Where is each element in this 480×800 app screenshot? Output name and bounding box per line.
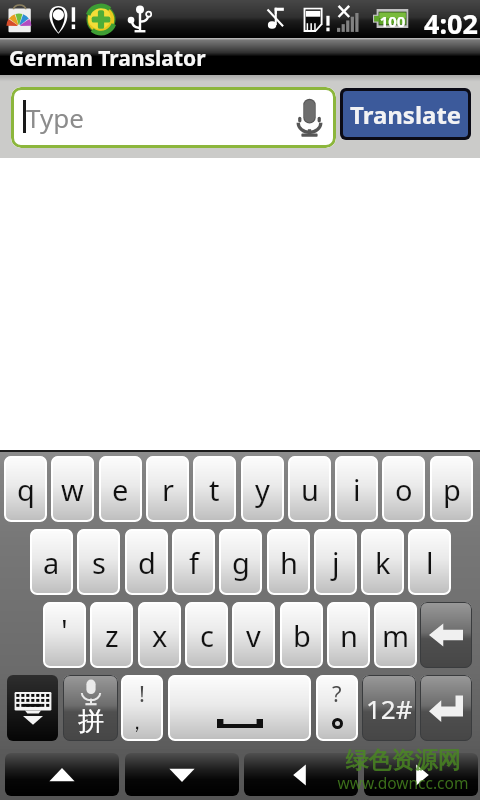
staticText: 100 xyxy=(377,11,408,31)
staticText: g xyxy=(232,543,250,582)
staticText: ? xyxy=(332,678,342,708)
button[interactable]: Symbols xyxy=(362,675,416,741)
staticText: a xyxy=(43,543,60,582)
button[interactable]: h xyxy=(267,529,310,595)
button[interactable]: n xyxy=(327,602,370,668)
button[interactable]: Left xyxy=(244,753,358,796)
button[interactable]: Backspace xyxy=(420,602,472,668)
staticText: s xyxy=(92,543,106,582)
staticText: h xyxy=(280,543,298,582)
staticText: Translate xyxy=(350,98,462,131)
button[interactable]: Type xyxy=(11,87,336,148)
button[interactable]: t xyxy=(193,456,236,522)
staticText: 绿色资源网 xyxy=(340,746,466,775)
button[interactable]: y xyxy=(241,456,284,522)
button[interactable]: exclamation xyxy=(121,675,163,741)
staticText: j xyxy=(332,543,340,582)
button[interactable]: v xyxy=(232,602,275,668)
staticText: 拼 xyxy=(78,705,104,738)
button[interactable]: o xyxy=(382,456,425,522)
staticText: q xyxy=(17,470,35,509)
staticText: o xyxy=(395,470,413,509)
staticText: u xyxy=(301,470,319,509)
staticText: w xyxy=(61,470,84,509)
button[interactable]: q xyxy=(4,456,47,522)
staticText: German Translator xyxy=(9,44,206,73)
button[interactable]: l xyxy=(408,529,451,595)
button[interactable]: w xyxy=(51,456,94,522)
button[interactable]: g xyxy=(219,529,262,595)
button[interactable]: Hide keyboard xyxy=(7,675,58,741)
button[interactable]: m xyxy=(374,602,417,668)
button[interactable]: Up xyxy=(5,753,119,796)
button[interactable]: s xyxy=(77,529,120,595)
button[interactable]: f xyxy=(172,529,215,595)
staticText: b xyxy=(293,616,311,655)
button[interactable]: j xyxy=(314,529,357,595)
button[interactable]: a xyxy=(30,529,73,595)
staticText: f xyxy=(189,543,199,582)
staticText: 4:02 xyxy=(424,5,478,42)
button[interactable]: z xyxy=(90,602,133,668)
staticText: d xyxy=(138,543,156,582)
staticText: l xyxy=(426,543,434,582)
staticText: i xyxy=(353,470,361,509)
button[interactable]: b xyxy=(280,602,323,668)
button[interactable]: Voice input xyxy=(63,675,118,741)
staticText: ! xyxy=(139,678,145,708)
staticText: y xyxy=(255,470,270,509)
staticText: Type xyxy=(26,100,84,135)
button[interactable]: Space xyxy=(168,675,311,741)
staticText: c xyxy=(200,616,214,655)
staticText: 12# xyxy=(366,691,413,726)
button[interactable]: Down xyxy=(125,753,239,796)
button[interactable]: question xyxy=(316,675,358,741)
staticText: p xyxy=(443,470,461,509)
staticText: r xyxy=(162,470,174,509)
button[interactable]: r xyxy=(146,456,189,522)
staticText: v xyxy=(246,616,261,655)
staticText: www.downcc.com xyxy=(335,772,471,793)
button[interactable]: apostrophe xyxy=(43,602,86,668)
button[interactable]: c xyxy=(185,602,228,668)
staticText: n xyxy=(340,616,358,655)
button[interactable]: e xyxy=(99,456,142,522)
staticText: k xyxy=(375,543,391,582)
staticText: z xyxy=(105,616,119,655)
staticText: ， xyxy=(127,710,147,735)
button[interactable]: Translate xyxy=(343,91,468,137)
button[interactable]: x xyxy=(138,602,181,668)
button[interactable]: Right xyxy=(364,753,478,796)
staticText: m xyxy=(382,616,410,655)
button[interactable]: k xyxy=(361,529,404,595)
staticText: ' xyxy=(61,610,68,651)
button[interactable]: Enter xyxy=(420,675,472,741)
staticText: x xyxy=(152,616,168,655)
button[interactable]: i xyxy=(335,456,378,522)
button[interactable]: d xyxy=(125,529,168,595)
staticText: t xyxy=(209,470,220,509)
button[interactable]: u xyxy=(288,456,331,522)
button[interactable]: p xyxy=(430,456,473,522)
staticText: e xyxy=(112,470,129,509)
